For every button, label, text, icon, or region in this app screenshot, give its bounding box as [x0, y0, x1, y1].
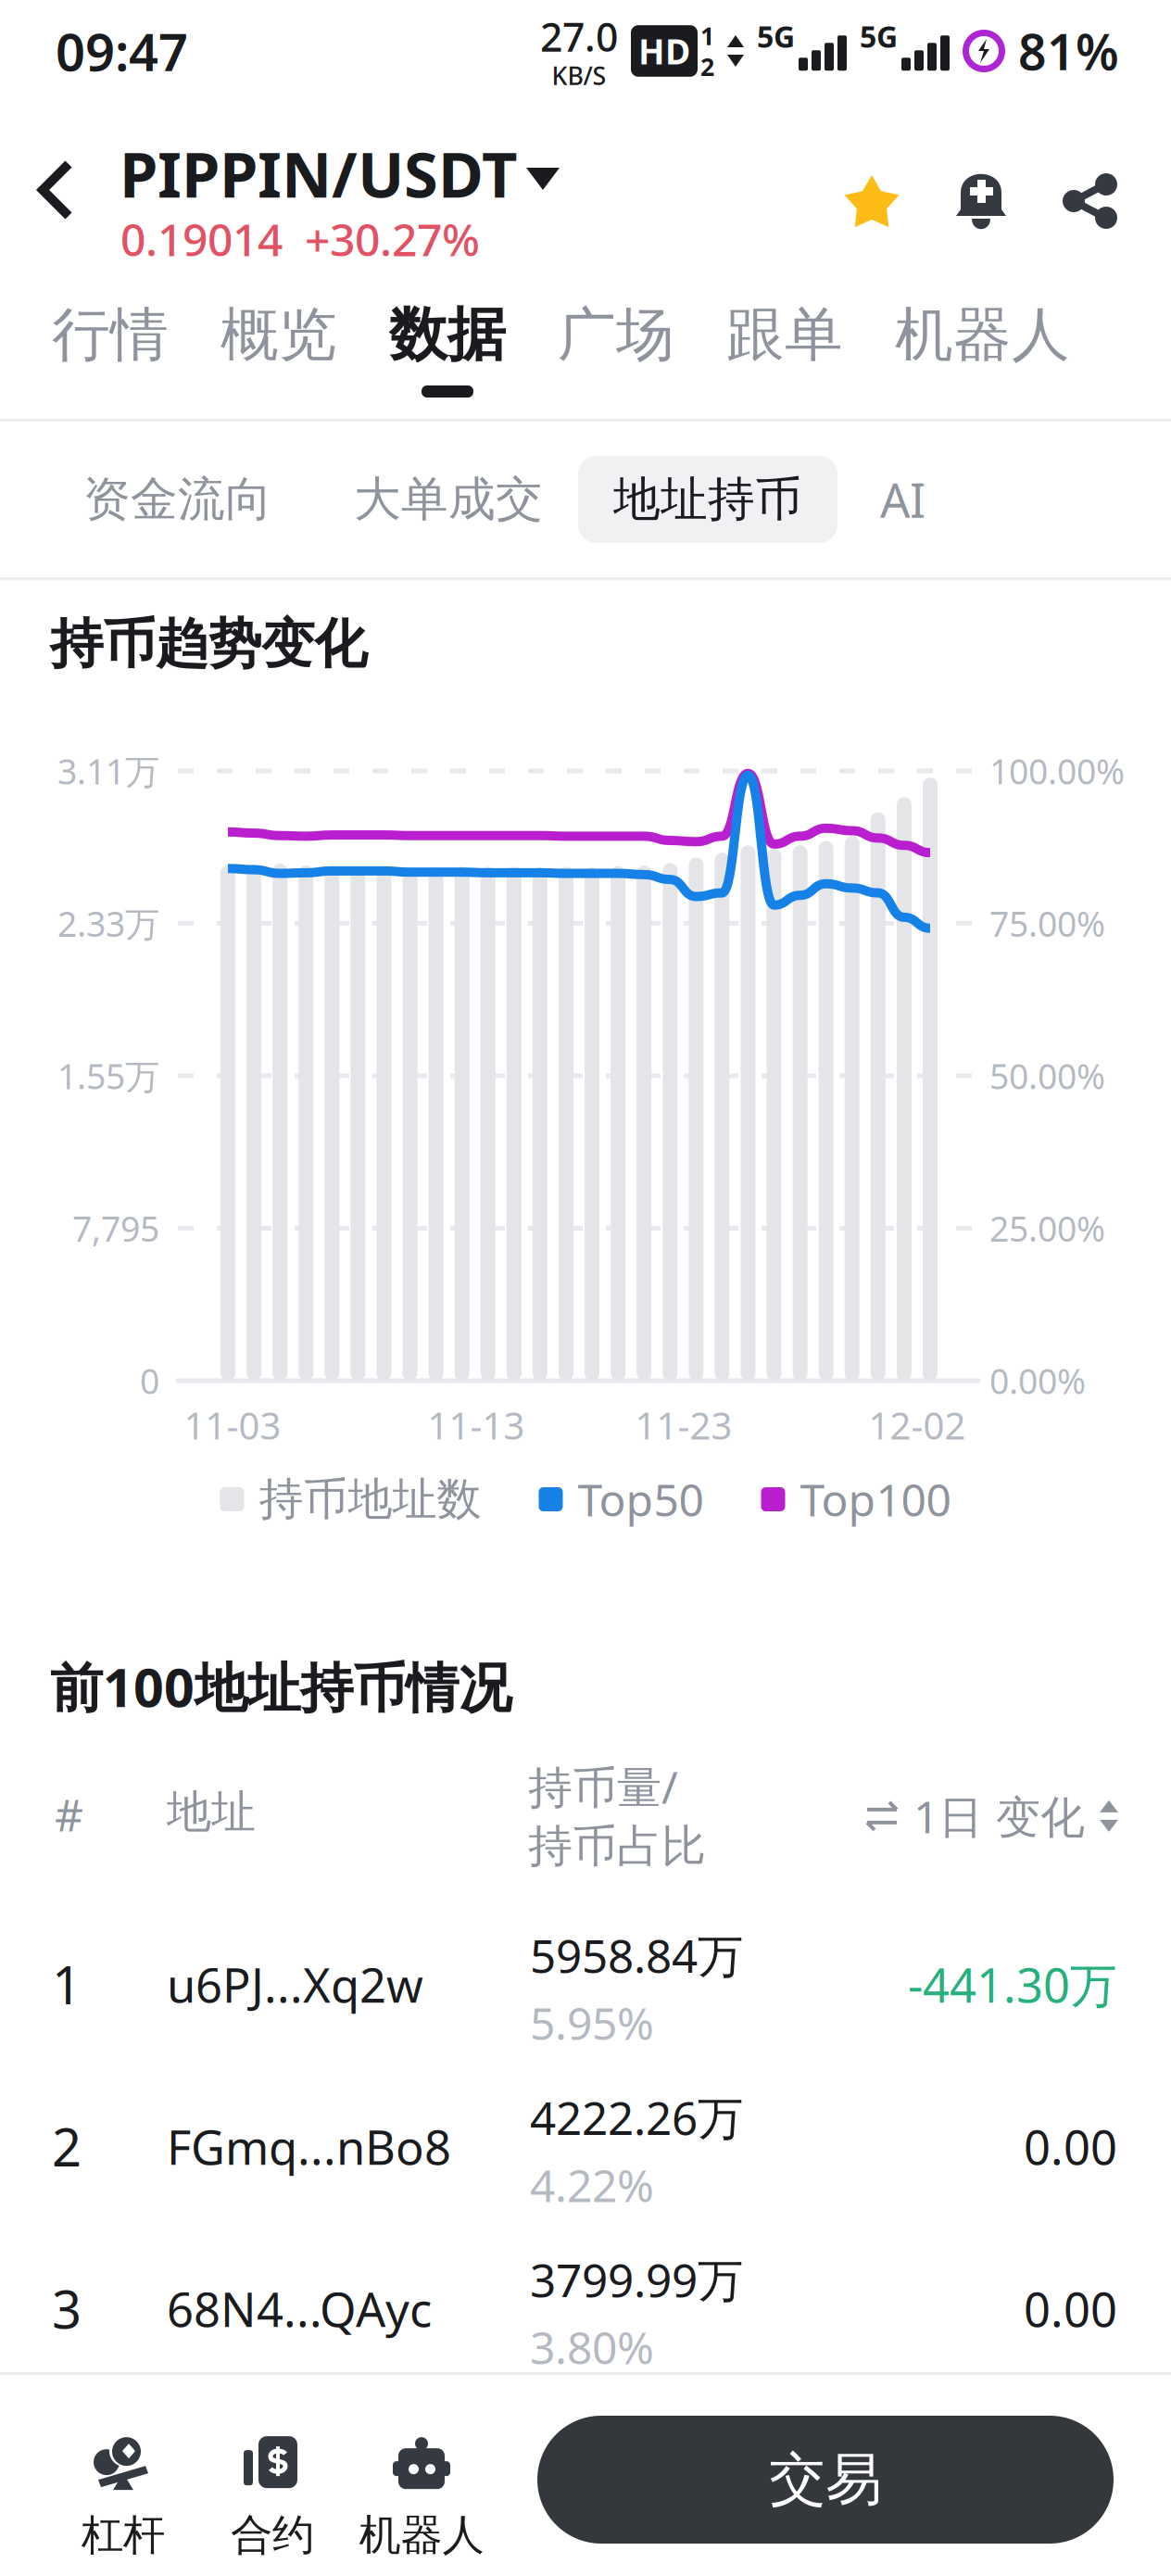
- staticText: 大单成交: [354, 471, 543, 528]
- staticText: 2: [52, 2112, 82, 2181]
- staticText: 1: [52, 1950, 82, 2019]
- staticText: 5G: [757, 16, 795, 56]
- staticText: 11-13: [428, 1400, 525, 1450]
- staticText: 地址: [167, 1785, 256, 1839]
- button[interactable]: 数据: [363, 278, 532, 419]
- staticText: 2.33万: [57, 900, 159, 946]
- staticText: u6PJ...Xq2w: [167, 1953, 423, 2016]
- button[interactable]: 行情: [26, 278, 195, 419]
- button[interactable]: 跟单: [700, 278, 869, 419]
- button[interactable]: 2: [0, 2069, 1171, 2232]
- staticText: 持币占比: [528, 1819, 706, 1874]
- staticText: 12-02: [869, 1400, 966, 1450]
- staticText: 7,795: [72, 1205, 159, 1251]
- button[interactable]: 机器人: [343, 2416, 500, 2576]
- staticText: FGmq...nBo8: [167, 2115, 451, 2178]
- button[interactable]: 地址持币: [578, 456, 837, 543]
- button[interactable]: 杠杆: [54, 2416, 193, 2576]
- staticText: 11-23: [635, 1400, 732, 1450]
- staticText: -441.30万: [908, 1953, 1117, 2016]
- button[interactable]: Select market: [526, 168, 554, 187]
- button[interactable]: Back: [33, 144, 107, 236]
- staticText: PIPPIN/USDT: [120, 133, 517, 215]
- staticText: 25.00%: [989, 1205, 1105, 1251]
- button[interactable]: 1: [0, 1907, 1171, 2070]
- staticText: 持币趋势变化: [50, 612, 367, 677]
- staticText: 68N4...QAyc: [167, 2278, 432, 2340]
- staticText: 27.0: [540, 10, 618, 63]
- staticText: 资金流向: [83, 471, 272, 528]
- staticText: 4222.26万: [530, 2087, 743, 2147]
- staticText: 5958.84万: [530, 1925, 743, 1985]
- staticText: 3: [52, 2274, 82, 2343]
- staticText: 前100地址持币情况: [50, 1651, 511, 1722]
- button[interactable]: Favorite: [842, 172, 901, 230]
- staticText: Top100: [800, 1470, 951, 1529]
- staticText: 5G: [860, 16, 898, 56]
- staticText: 持币地址数: [259, 1472, 481, 1527]
- staticText: 3.80%: [530, 2317, 654, 2376]
- button[interactable]: Share: [1062, 172, 1119, 230]
- staticText: KB/S: [552, 59, 606, 92]
- staticText: 交易: [769, 2445, 882, 2514]
- staticText: Top50: [578, 1470, 704, 1529]
- button[interactable]: AI: [845, 453, 961, 546]
- staticText: 5.95%: [530, 1993, 654, 2052]
- staticText: 3799.99万: [530, 2249, 743, 2310]
- staticText: 跟单: [726, 299, 843, 371]
- button[interactable]: 合约: [203, 2416, 342, 2576]
- staticText: 50.00%: [989, 1053, 1105, 1099]
- button[interactable]: 资金流向: [48, 456, 308, 543]
- staticText: 机器人: [359, 2509, 484, 2561]
- button[interactable]: 机器人: [869, 278, 1096, 419]
- staticText: 100.00%: [989, 748, 1125, 794]
- staticText: 2: [700, 50, 714, 83]
- staticText: 0.00: [1024, 2115, 1117, 2178]
- staticText: 行情: [52, 299, 169, 371]
- staticText: #: [55, 1785, 83, 1844]
- staticText: 11-03: [184, 1400, 281, 1450]
- staticText: HD: [638, 28, 690, 74]
- staticText: 0.00%: [989, 1358, 1086, 1404]
- staticText: 持币量/: [528, 1757, 678, 1816]
- staticText: 1日 变化: [913, 1787, 1085, 1846]
- staticText: 75.00%: [989, 900, 1105, 946]
- button[interactable]: 大单成交: [319, 456, 578, 543]
- staticText: 机器人: [895, 299, 1070, 371]
- staticText: 3.11万: [57, 748, 159, 794]
- button[interactable]: 3: [0, 2231, 1171, 2394]
- staticText: 0.00: [1024, 2278, 1117, 2340]
- staticText: 1: [700, 19, 714, 52]
- staticText: AI: [880, 468, 925, 531]
- button[interactable]: 概览: [195, 278, 363, 419]
- staticText: 09:47: [56, 16, 188, 85]
- button[interactable]: 广场: [532, 278, 700, 419]
- staticText: 0: [140, 1358, 159, 1404]
- staticText: 1.55万: [57, 1053, 159, 1099]
- staticText: 4.22%: [530, 2155, 654, 2214]
- staticText: 广场: [558, 299, 674, 371]
- staticText: 数据: [389, 299, 506, 371]
- staticText: 地址持币: [613, 471, 802, 528]
- staticText: 81%: [1018, 18, 1119, 84]
- staticText: 合约: [231, 2509, 314, 2561]
- button[interactable]: Price alert: [955, 172, 1007, 230]
- staticText: 杠杆: [82, 2509, 165, 2561]
- staticText: 概览: [220, 299, 337, 371]
- button[interactable]: 交易: [537, 2416, 1114, 2544]
- staticText: 0.19014 +30.27%: [120, 209, 480, 268]
